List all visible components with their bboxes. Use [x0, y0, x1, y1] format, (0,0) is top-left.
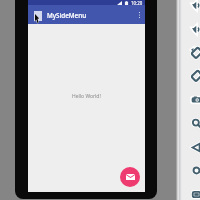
button[interactable]: Volume up [189, 0, 200, 12]
button[interactable]: Open navigation drawer [34, 11, 42, 21]
button[interactable]: More options [134, 5, 145, 24]
staticText: Hello World! [72, 93, 101, 100]
button[interactable]: Back [189, 140, 200, 154]
button[interactable]: Home [189, 163, 200, 177]
button[interactable]: Rotate left [189, 45, 200, 59]
staticText: MySideMenu [47, 11, 87, 20]
button[interactable]: Volume down [189, 22, 200, 36]
button[interactable]: Rotate right [189, 68, 200, 82]
button[interactable]: Compose email [120, 167, 140, 187]
button[interactable]: Overview [189, 187, 200, 200]
button[interactable]: Take screenshot [189, 92, 200, 106]
button[interactable]: Zoom [189, 116, 200, 130]
staticText: 10:20 [131, 0, 143, 5]
